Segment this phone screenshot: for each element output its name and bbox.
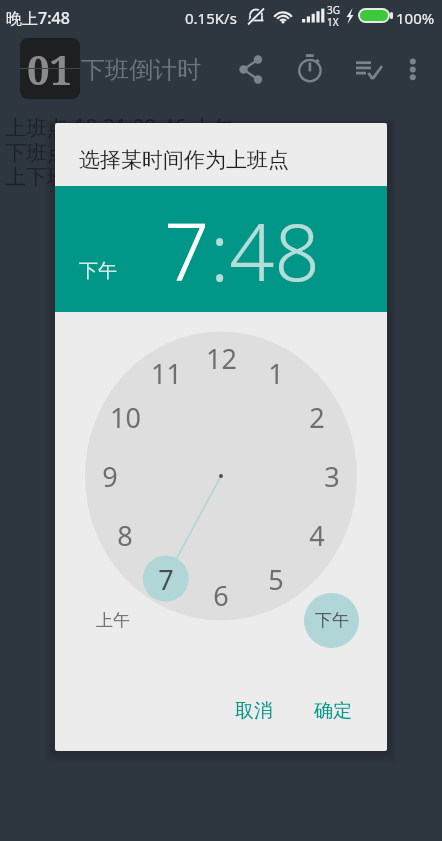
button[interactable]: 上午 — [86, 593, 140, 647]
staticText: 8 — [117, 517, 133, 554]
staticText: 上下班时长: 8 小时 2 分 — [5, 162, 225, 191]
staticText: 01 — [27, 42, 73, 96]
staticText: 12 — [206, 340, 237, 377]
staticText: 100% — [396, 8, 435, 28]
button[interactable]: Records — [349, 48, 391, 90]
button[interactable]: More options — [395, 48, 437, 90]
staticText: 4 — [309, 517, 325, 554]
staticText: 上班点 18:31 09:46 上午 — [5, 113, 234, 142]
staticText: 确定 — [314, 699, 352, 723]
staticText: 7 — [158, 561, 174, 598]
staticText: 1X — [327, 15, 339, 29]
staticText: 下午 — [315, 610, 349, 631]
staticText: 6 — [213, 577, 229, 614]
staticText: 3G — [327, 3, 340, 17]
staticText: 3 — [324, 458, 340, 495]
staticText: 取消 — [235, 699, 273, 723]
button[interactable]: 确定 — [301, 687, 364, 735]
staticText: 上午 — [96, 610, 130, 631]
staticText: :48 — [210, 197, 320, 305]
staticText: 5 — [268, 561, 284, 598]
button[interactable]: Timer — [290, 48, 332, 90]
staticText: 选择某时间作为上班点 — [79, 147, 289, 173]
button[interactable]: 取消 — [222, 687, 285, 735]
button[interactable]: 下午 — [304, 593, 359, 648]
staticText: 11 — [151, 355, 182, 392]
staticText: 7 — [164, 197, 210, 305]
staticText: 晚上7:48 — [6, 7, 70, 29]
staticText: 0.15K/s — [185, 8, 237, 28]
staticText: 1 — [268, 355, 284, 392]
staticText: 下午 — [79, 259, 117, 283]
staticText: 下班倒计时 — [81, 55, 201, 85]
staticText: 2 — [309, 399, 325, 436]
staticText: 9 — [102, 458, 118, 495]
staticText: 下班点 16:33 05:36 下午 — [5, 138, 234, 167]
button[interactable]: Share — [230, 48, 272, 90]
staticText: 10 — [110, 399, 141, 436]
